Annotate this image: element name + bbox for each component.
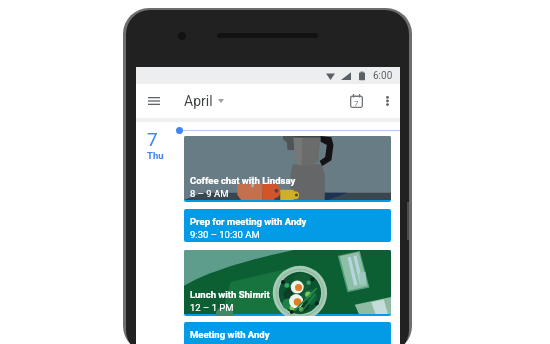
button[interactable]: More options: [380, 91, 394, 111]
staticText: Prep for meeting with Andy: [190, 216, 307, 227]
button[interactable]: Open navigation drawer: [145, 91, 163, 111]
staticText: 7: [354, 99, 359, 108]
button[interactable]: Meeting with Andy: [184, 322, 391, 344]
staticText: Thu: [147, 150, 164, 161]
staticText: Lunch with Shimrit: [190, 289, 270, 300]
button[interactable]: Lunch with Shimrit: [184, 250, 391, 316]
button[interactable]: Go to today: [347, 91, 365, 111]
button[interactable]: Prep for meeting with Andy: [184, 209, 391, 242]
staticText: 7: [147, 128, 158, 150]
staticText: 6:00: [373, 70, 393, 82]
staticText: 8 – 9 AM: [190, 188, 229, 199]
staticText: Meeting with Andy: [190, 329, 270, 340]
staticText: 9:30 – 10:30 AM: [190, 229, 260, 240]
staticText: April: [184, 93, 213, 109]
staticText: Coffee chat with Lindsay: [190, 175, 296, 186]
button[interactable]: April: [184, 93, 224, 109]
button[interactable]: Coffee chat with Lindsay: [184, 136, 391, 202]
staticText: 12 – 1 PM: [190, 302, 234, 313]
